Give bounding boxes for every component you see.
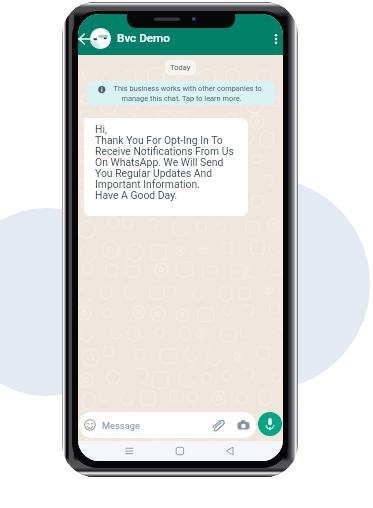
button[interactable]: Back (78, 28, 94, 50)
button[interactable]: This business works with other companies… (87, 81, 275, 105)
staticText: This business works with other companies… (101, 84, 262, 103)
staticText: Hi, Thank You For Opt-Ing In To Receive … (95, 123, 234, 201)
button[interactable]: Profile photo (90, 28, 111, 49)
button[interactable]: Bvc Demo (117, 31, 170, 45)
staticText: Today (170, 63, 191, 72)
button[interactable]: Emoji (79, 412, 256, 438)
button[interactable]: More options (268, 28, 283, 50)
other: Emoji (84, 419, 96, 431)
button[interactable]: Attach (211, 419, 224, 432)
button[interactable]: Voice message (258, 412, 282, 436)
staticText: Message (102, 420, 140, 431)
button[interactable]: Today (165, 60, 196, 75)
button[interactable]: Hi, Thank You For Opt-Ing In To Receive … (84, 118, 248, 216)
button[interactable]: Camera (237, 419, 250, 432)
